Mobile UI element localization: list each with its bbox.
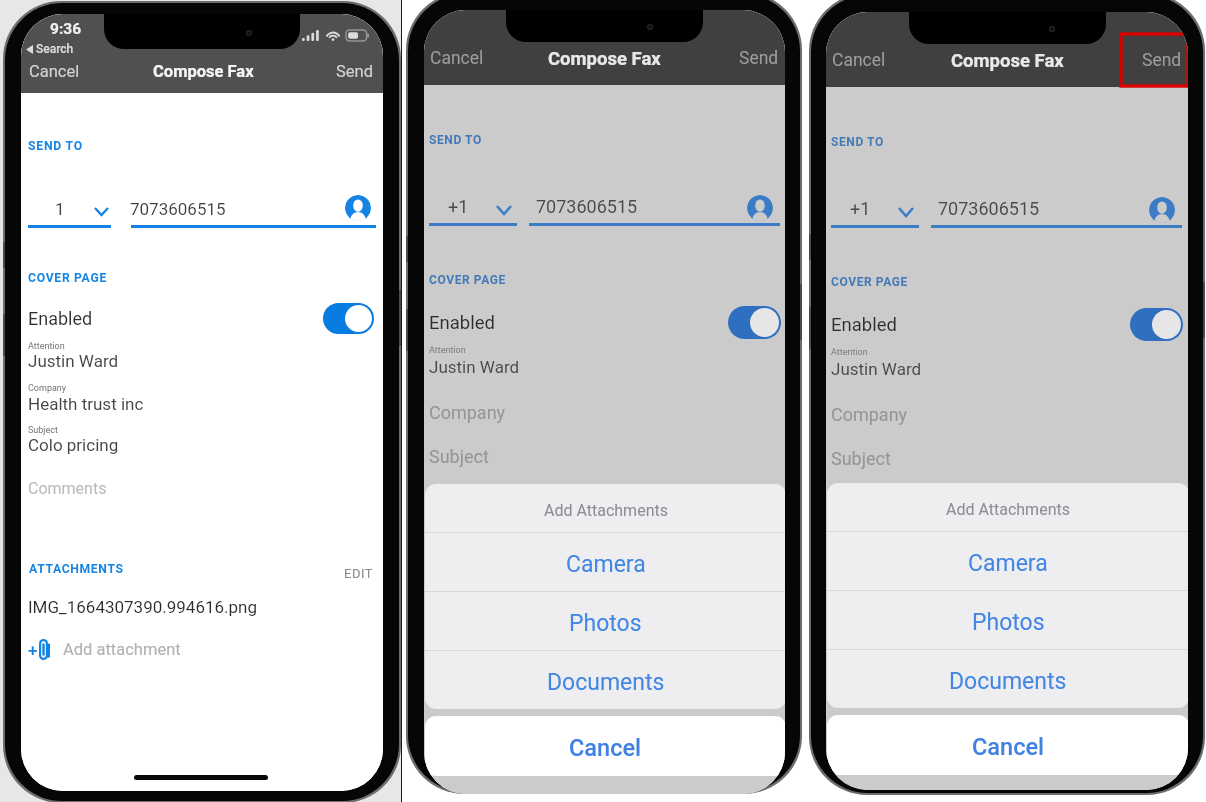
button[interactable]: Send [331,57,378,86]
button[interactable]: Cancel [425,43,489,74]
staticText: Photos [972,609,1045,636]
staticText: IMG_1664307390.994616.png [28,597,258,617]
staticText: 7073606515 [130,199,226,219]
staticText: 7073606515 [938,198,1040,219]
staticText: Enabled [28,308,93,329]
staticText: Cancel [569,734,642,762]
staticText: Colo pricing [28,435,119,455]
staticText: Subject [28,425,58,436]
staticText: SEND TO [28,139,83,153]
staticText: SEND TO [429,133,482,147]
button[interactable]: Documents [425,651,785,709]
button[interactable]: Camera [425,533,785,591]
staticText: +1 [850,198,871,219]
staticText: Compose Fax [951,50,1064,72]
staticText: Cancel [430,48,484,69]
staticText: Add attachment [63,640,181,659]
staticText: Send [739,48,779,69]
staticText: Documents [547,669,665,696]
button[interactable]: Send [1137,45,1187,76]
button[interactable]: Cover page enabled [1130,308,1183,341]
button[interactable]: Photos [425,592,785,650]
button[interactable]: Cover page enabled [323,303,374,334]
staticText: 9:36 [50,20,82,38]
staticText: 1 [55,199,65,219]
staticText: Enabled [831,314,897,336]
button[interactable]: Cancel [24,57,85,86]
staticText: Company [28,383,67,394]
staticText: ATTACHMENTS [29,562,124,576]
staticText: Send [1142,50,1182,71]
button[interactable]: + [28,639,181,660]
staticText: Cancel [972,733,1045,761]
staticText: Justin Ward [28,351,119,371]
button[interactable]: Choose contact [345,195,371,221]
button[interactable]: Cover page enabled [728,306,781,339]
staticText: Company [831,404,908,425]
staticText: COVER PAGE [28,271,107,285]
button[interactable]: Documents [827,650,1188,708]
staticText: Add Attachments [544,501,668,520]
staticText: Subject [429,446,489,467]
staticText: Cancel [832,50,886,71]
button[interactable]: Add Attachments [425,484,785,532]
staticText: COVER PAGE [429,273,506,287]
staticText: Documents [949,668,1067,695]
staticText: Camera [566,551,646,578]
staticText: Camera [968,550,1048,577]
button[interactable]: Add Attachments [827,483,1188,531]
button[interactable]: Photos [827,591,1188,649]
button[interactable]: Camera [827,532,1188,590]
staticText: Comments [28,479,107,498]
staticText: Photos [569,610,642,637]
staticText: + [28,640,38,660]
staticText: COVER PAGE [831,275,908,289]
staticText: EDIT [344,566,374,581]
staticText: Health trust inc [28,394,144,414]
button[interactable]: EDIT [344,566,374,581]
staticText: Subject [831,448,891,469]
button[interactable]: Send [734,43,784,74]
staticText: Justin Ward [831,359,922,379]
button[interactable]: Cancel [827,45,891,76]
button[interactable]: Choose contact [747,195,773,221]
staticText: +1 [448,196,469,217]
staticText: Justin Ward [429,357,520,377]
staticText: SEND TO [831,135,884,149]
staticText: Company [429,402,506,423]
staticText: Attention [28,341,65,352]
staticText: Send [336,62,373,81]
staticText: Attention [831,347,868,358]
staticText: Add Attachments [946,500,1070,519]
staticText: Compose Fax [153,62,254,81]
staticText: Search [36,42,74,56]
staticText: Cancel [29,62,80,81]
button[interactable]: Choose contact [1149,197,1175,223]
staticText: 7073606515 [536,196,638,217]
staticText: Compose Fax [548,48,661,70]
staticText: Attention [429,345,466,356]
button[interactable]: Cancel [827,715,1188,775]
staticText: Enabled [429,312,495,334]
button[interactable]: Cancel [425,716,785,776]
